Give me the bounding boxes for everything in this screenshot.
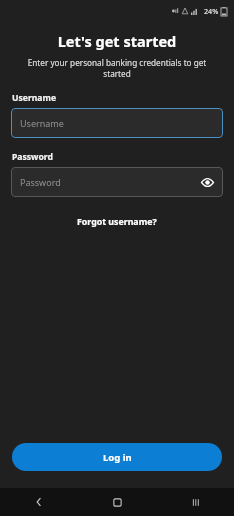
button[interactable]: Username (11, 108, 223, 138)
staticText: Enter your personal banking credentials … (22, 57, 212, 79)
staticText: Password (20, 176, 61, 188)
staticText: Log in (103, 451, 132, 464)
button[interactable]: Password (11, 167, 223, 197)
button[interactable]: Home (78, 488, 156, 516)
staticText: Password (12, 151, 53, 163)
staticText: Username (20, 117, 64, 129)
button[interactable]: Show password (197, 172, 217, 192)
button[interactable]: Log in (12, 443, 222, 471)
staticText: 24% (204, 6, 219, 16)
staticText: Let's get started (0, 31, 234, 51)
staticText: Username (12, 92, 57, 104)
button[interactable]: Back (0, 488, 78, 516)
button[interactable]: Recent apps (156, 488, 234, 516)
button[interactable]: Forgot username? (69, 213, 165, 231)
staticText: Forgot username? (77, 216, 157, 228)
